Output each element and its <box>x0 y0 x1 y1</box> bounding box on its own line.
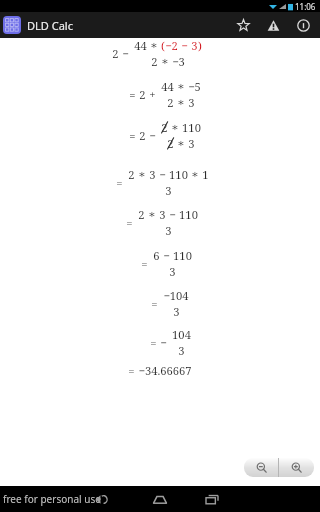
staticText: free for personal use <box>3 492 101 506</box>
staticText: 44 <box>161 79 174 94</box>
staticText: 110 <box>169 167 188 182</box>
staticText: 3 <box>191 38 198 53</box>
staticText: = <box>129 128 136 143</box>
staticText: = <box>151 296 158 311</box>
staticText: −5 <box>188 79 201 94</box>
staticText: 104 <box>172 327 191 342</box>
staticText: 2 <box>112 46 119 61</box>
button[interactable]: Info <box>288 12 318 38</box>
staticText: 1 <box>202 167 209 182</box>
staticText: 3 <box>169 264 176 279</box>
staticText: 110 <box>182 120 201 135</box>
staticText: ∗ <box>148 208 156 221</box>
staticText: 3 <box>165 223 172 238</box>
staticText: ∗ <box>177 80 185 93</box>
staticText: = <box>141 256 148 271</box>
staticText: 2 <box>161 120 168 135</box>
staticText: 2 <box>151 54 158 69</box>
staticText: = <box>129 87 136 102</box>
staticText: ∗ <box>138 168 146 181</box>
staticText: 2 <box>139 128 146 143</box>
staticText: 3 <box>165 183 172 198</box>
staticText: −104 <box>163 288 189 303</box>
staticText: 110 <box>173 248 192 263</box>
staticText: −3 <box>172 54 185 69</box>
staticText: = <box>116 175 123 190</box>
staticText: ∗ <box>150 39 158 52</box>
staticText: −34.66667 <box>138 363 192 378</box>
staticText: 3 <box>188 95 195 110</box>
staticText: − <box>181 38 188 53</box>
staticText: = <box>126 215 133 230</box>
staticText: 3 <box>178 343 185 358</box>
button[interactable]: Favorite <box>228 12 258 38</box>
button[interactable]: Back <box>84 486 118 512</box>
button[interactable]: Zoom out <box>244 458 278 477</box>
staticText: 2 <box>128 167 135 182</box>
staticText: DLD Calc <box>27 18 73 33</box>
staticText: 44 <box>134 38 147 53</box>
staticText: 110 <box>179 207 198 222</box>
staticText: = <box>128 363 135 378</box>
staticText: + <box>149 87 156 102</box>
staticText: ∗ <box>161 55 169 68</box>
button[interactable]: Warnings <box>258 12 288 38</box>
staticText: 3 <box>149 167 156 182</box>
staticText: 11:06 <box>295 1 316 12</box>
button[interactable]: Zoom in <box>279 458 314 477</box>
staticText: ∗ <box>177 137 185 150</box>
staticText: = <box>150 335 157 350</box>
staticText: − <box>163 248 170 263</box>
staticText: ) <box>198 38 202 53</box>
staticText: 3 <box>173 304 180 319</box>
staticText: 2 <box>167 95 174 110</box>
staticText: − <box>169 207 176 222</box>
staticText: − <box>160 335 167 350</box>
staticText: 2 <box>139 87 146 102</box>
staticText: ∗ <box>191 168 199 181</box>
button[interactable]: Home <box>140 486 180 512</box>
staticText: 3 <box>188 136 195 151</box>
staticText: − <box>122 46 129 61</box>
staticText: ∗ <box>171 121 179 134</box>
staticText: ( <box>161 38 165 53</box>
button[interactable]: Recents <box>192 486 232 512</box>
